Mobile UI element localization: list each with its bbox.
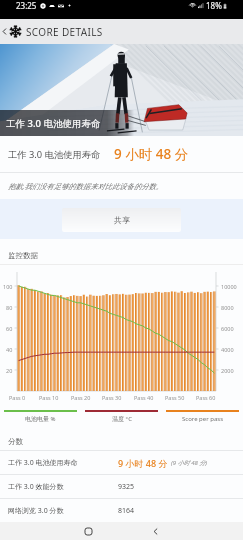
staticText: 6000 bbox=[221, 325, 234, 332]
staticText: Pass 50 bbox=[165, 394, 185, 401]
button[interactable]: Home bbox=[78, 522, 98, 540]
staticText: 2000 bbox=[221, 367, 234, 374]
button[interactable]: 共享 bbox=[62, 208, 181, 232]
staticText: 抱歉,我们没有足够的数据来对比此设备的分数。 bbox=[8, 181, 164, 191]
staticText: 23:25 bbox=[16, 0, 37, 11]
button[interactable]: 工作 3.0 电池使用寿命 bbox=[0, 451, 243, 474]
staticText: (9 小时 48 分) bbox=[171, 459, 208, 467]
staticText: 网络浏览 3.0 分数 bbox=[8, 506, 64, 516]
button[interactable]: 网络浏览 3.0 分数 bbox=[0, 499, 243, 522]
staticText: 40 bbox=[6, 346, 13, 353]
staticText: 温度 °C bbox=[112, 415, 132, 423]
staticText: 8164 bbox=[118, 506, 135, 516]
staticText: Pass 0 bbox=[9, 394, 26, 401]
staticText: Score per pass bbox=[182, 415, 224, 423]
staticText: Pass 30 bbox=[102, 394, 122, 401]
staticText: Pass 60 bbox=[196, 394, 216, 401]
staticText: 工作 3.0 电池使用寿命 bbox=[6, 117, 101, 130]
button[interactable]: Back bbox=[145, 522, 165, 540]
button[interactable]: 工作 3.0 效能分数 bbox=[0, 475, 243, 498]
staticText: 9325 bbox=[118, 482, 135, 492]
staticText: 工作 3.0 电池使用寿命 bbox=[8, 148, 101, 161]
staticText: 9 小时 48 分 bbox=[118, 457, 168, 469]
staticText: 4000 bbox=[221, 346, 234, 353]
staticText: 监控数据 bbox=[8, 251, 38, 260]
staticText: 分数 bbox=[8, 437, 23, 446]
staticText: Pass 40 bbox=[134, 394, 154, 401]
staticText: 工作 3.0 电池使用寿命 bbox=[8, 458, 78, 468]
staticText: SCORE DETAILS bbox=[26, 25, 103, 39]
staticText: 工作 3.0 效能分数 bbox=[8, 482, 64, 492]
staticText: 电池电量 % bbox=[25, 415, 56, 423]
staticText: 80 bbox=[6, 304, 13, 311]
staticText: 8000 bbox=[221, 304, 234, 311]
staticText: Pass 10 bbox=[39, 394, 59, 401]
staticText: 18% bbox=[206, 0, 222, 11]
staticText: 20 bbox=[6, 367, 13, 374]
staticText: 100 bbox=[3, 283, 13, 290]
staticText: 共享 bbox=[114, 215, 130, 225]
staticText: 9 小时 48 分 bbox=[114, 145, 189, 163]
staticText: Pass 20 bbox=[71, 394, 91, 401]
staticText: 10000 bbox=[221, 283, 237, 290]
button[interactable]: Back bbox=[0, 19, 9, 44]
staticText: 60 bbox=[6, 325, 13, 332]
